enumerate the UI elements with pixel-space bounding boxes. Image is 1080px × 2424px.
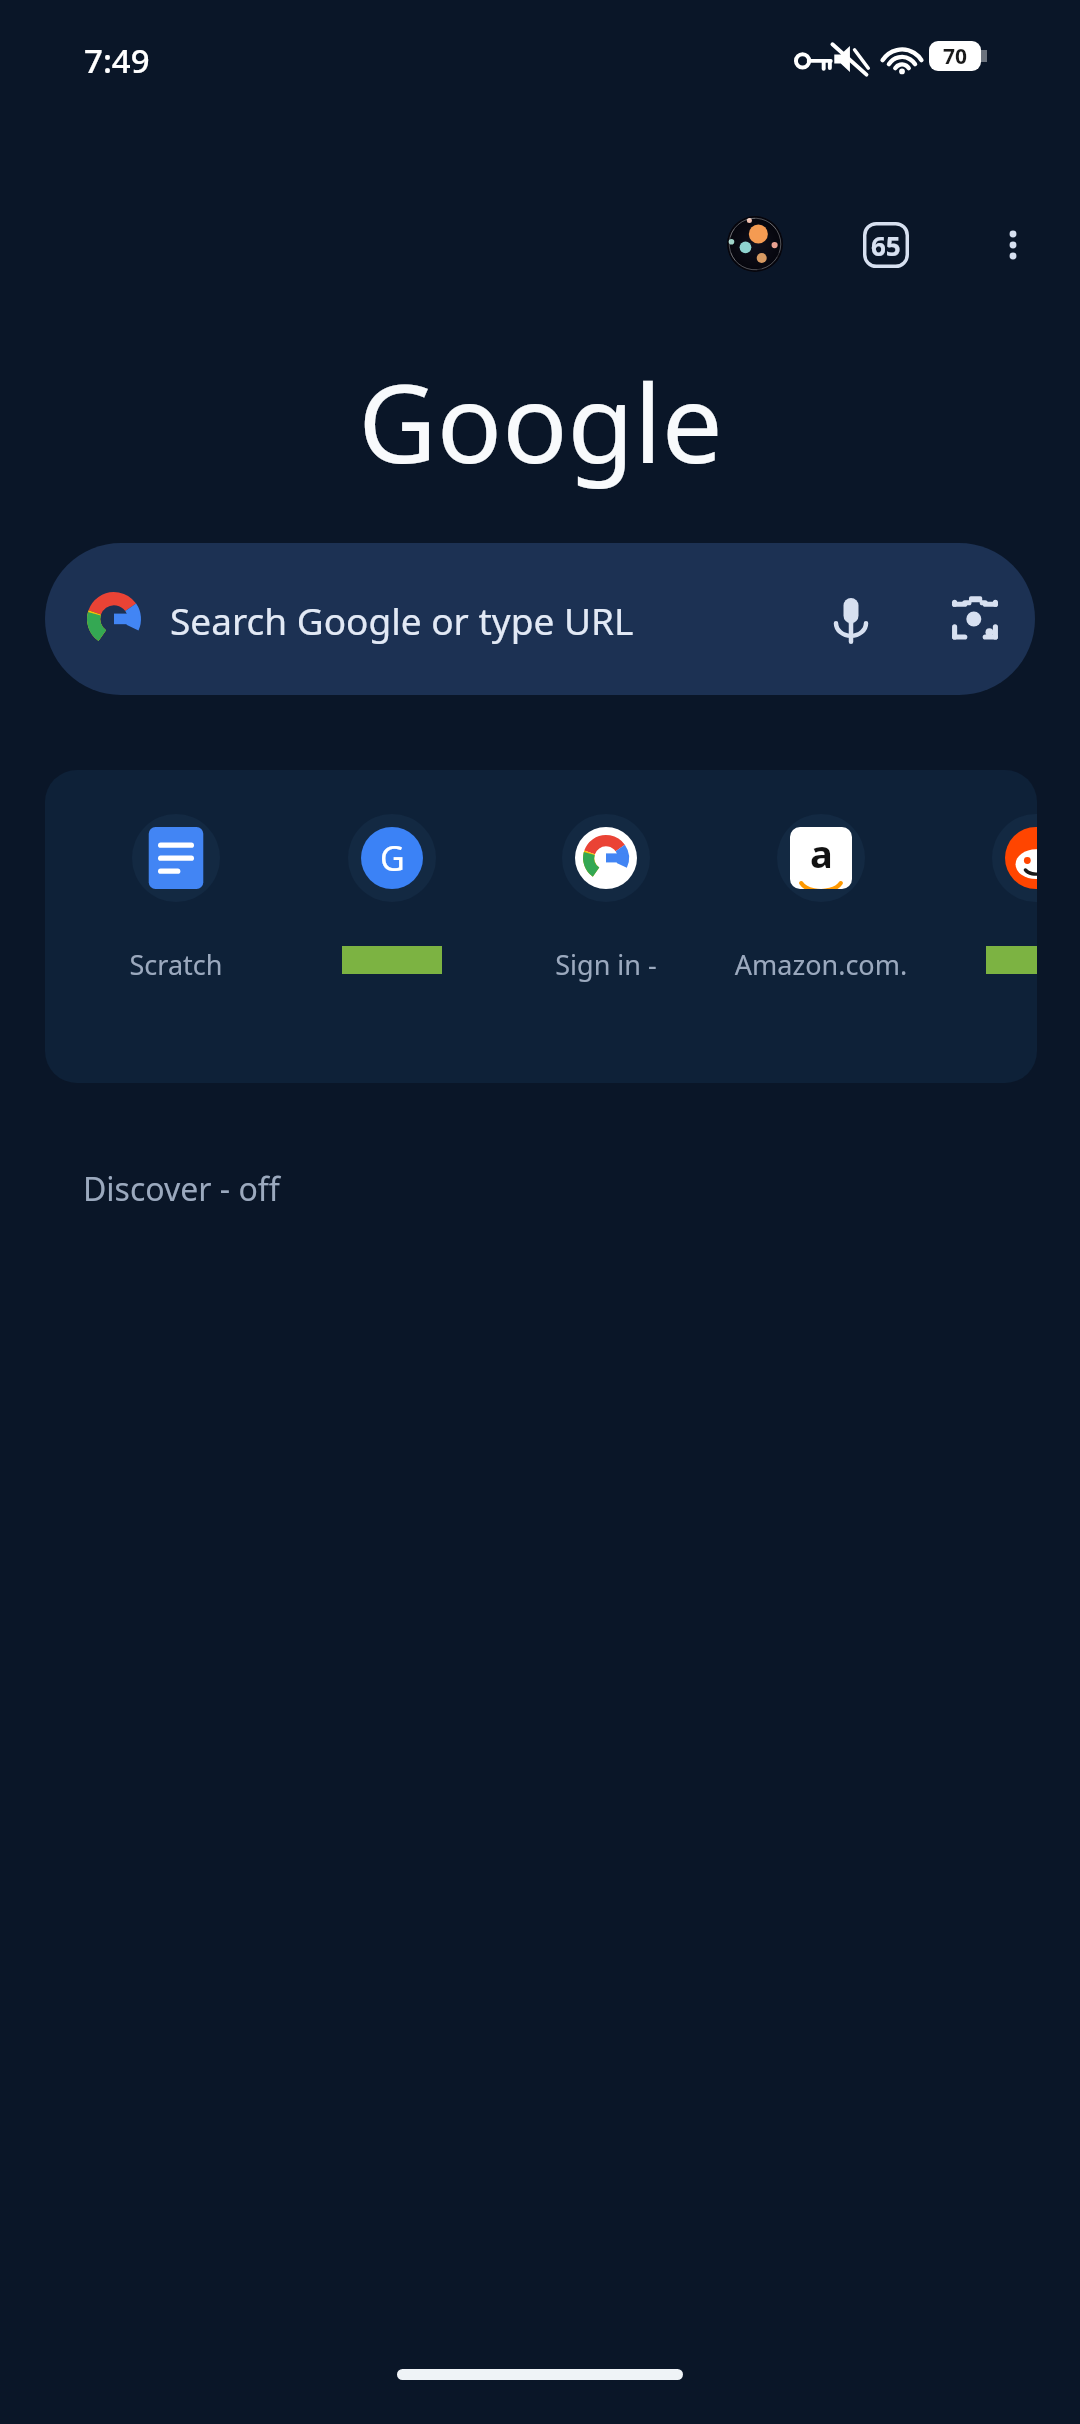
- button[interactable]: More options: [990, 222, 1036, 268]
- staticText: Sign in - Goo…: [518, 946, 694, 983]
- button[interactable]: Switch tabs: [863, 222, 909, 268]
- staticText: 70: [943, 42, 968, 71]
- button[interactable]: Shortcut: [948, 788, 1037, 1068]
- button[interactable]: Sign in - Goo…: [518, 788, 694, 1068]
- staticText: Search Google or type URL: [170, 595, 634, 645]
- staticText: G: [380, 835, 405, 881]
- staticText: 7:49: [84, 38, 150, 83]
- button[interactable]: Shortcut: [304, 788, 480, 1068]
- staticText: Discover - off: [83, 1167, 280, 1211]
- staticText: Scratch 2025…: [88, 946, 264, 983]
- staticText: a: [810, 827, 833, 879]
- staticText: 65: [871, 228, 901, 263]
- button[interactable]: Account: [727, 216, 783, 272]
- staticText: Amazon.com.…: [733, 946, 909, 983]
- button[interactable]: Voice search: [821, 589, 881, 649]
- button[interactable]: Search Google or type URL: [45, 543, 1035, 695]
- button[interactable]: Search with Google Lens: [945, 589, 1005, 649]
- staticText: Google: [358, 348, 723, 495]
- button[interactable]: Scratch 2025…: [88, 788, 264, 1068]
- button[interactable]: a: [733, 788, 909, 1068]
